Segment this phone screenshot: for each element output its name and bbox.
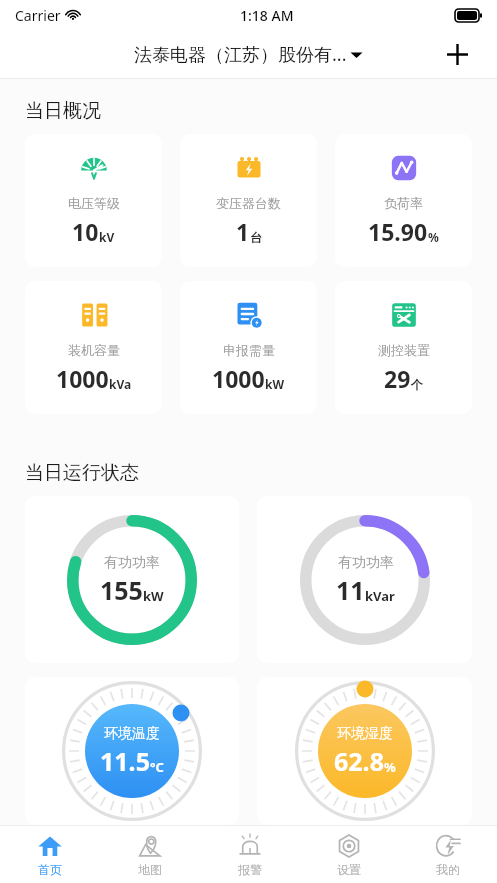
staticText: 1 [236, 216, 250, 247]
staticText: 1:18 AM [240, 6, 294, 25]
button[interactable]: 负荷率 [335, 134, 472, 267]
staticText: 地图 [138, 862, 162, 877]
staticText: 首页 [38, 862, 62, 877]
staticText: 11 [336, 573, 365, 607]
staticText: 变压器台数 [216, 195, 281, 211]
staticText: 1000 [56, 363, 109, 394]
button[interactable]: Add [439, 36, 475, 72]
staticText: 装机容量 [68, 342, 120, 358]
button[interactable]: 有功功率 [257, 496, 472, 663]
staticText: % [384, 758, 396, 776]
button[interactable]: 环境温度 [25, 677, 239, 825]
staticText: 当日概况 [25, 99, 101, 123]
staticText: kVa [109, 376, 132, 392]
staticText: 有功功率 [104, 554, 160, 572]
staticText: 负荷率 [384, 195, 423, 211]
staticText: 申报需量 [223, 342, 275, 358]
staticText: 11.5 [100, 744, 150, 778]
staticText: 1000 [212, 363, 265, 394]
staticText: Carrier [15, 6, 61, 25]
staticText: 15.90 [368, 216, 428, 247]
staticText: 当日运行状态 [25, 461, 139, 485]
button[interactable]: 法泰电器（江苏）股份有... [130, 38, 368, 71]
staticText: 电压等级 [68, 195, 120, 211]
button[interactable]: 测控装置 [335, 281, 472, 414]
staticText: 个 [411, 377, 423, 392]
staticText: 29 [384, 363, 411, 394]
staticText: 10 [72, 216, 99, 247]
button[interactable]: 首页 [0, 826, 100, 883]
button[interactable]: 环境湿度 [257, 677, 472, 825]
button[interactable]: 变压器台数 [180, 134, 317, 267]
staticText: 台 [250, 230, 262, 245]
staticText: 环境湿度 [337, 725, 393, 743]
button[interactable]: 报警 [200, 826, 299, 883]
button[interactable]: 有功功率 [25, 496, 239, 663]
staticText: 我的 [436, 862, 460, 877]
button[interactable]: 装机容量 [25, 281, 162, 414]
button[interactable]: 申报需量 [180, 281, 317, 414]
staticText: 环境温度 [104, 725, 160, 743]
button[interactable]: 地图 [100, 826, 200, 883]
staticText: °C [150, 758, 164, 776]
button[interactable]: 电压等级 [25, 134, 162, 267]
staticText: 62.8 [334, 744, 384, 778]
staticText: 有功功率 [338, 554, 394, 572]
staticText: % [428, 229, 439, 245]
button[interactable]: 我的 [398, 826, 497, 883]
button[interactable]: 设置 [299, 826, 398, 883]
staticText: 155 [100, 573, 143, 607]
staticText: kW [143, 587, 164, 605]
staticText: 设置 [337, 862, 361, 877]
staticText: 法泰电器（江苏）股份有... [134, 42, 347, 67]
staticText: 报警 [238, 862, 262, 877]
staticText: kVar [365, 587, 395, 605]
staticText: kV [99, 229, 115, 245]
staticText: 测控装置 [378, 342, 430, 358]
staticText: kW [265, 376, 285, 392]
